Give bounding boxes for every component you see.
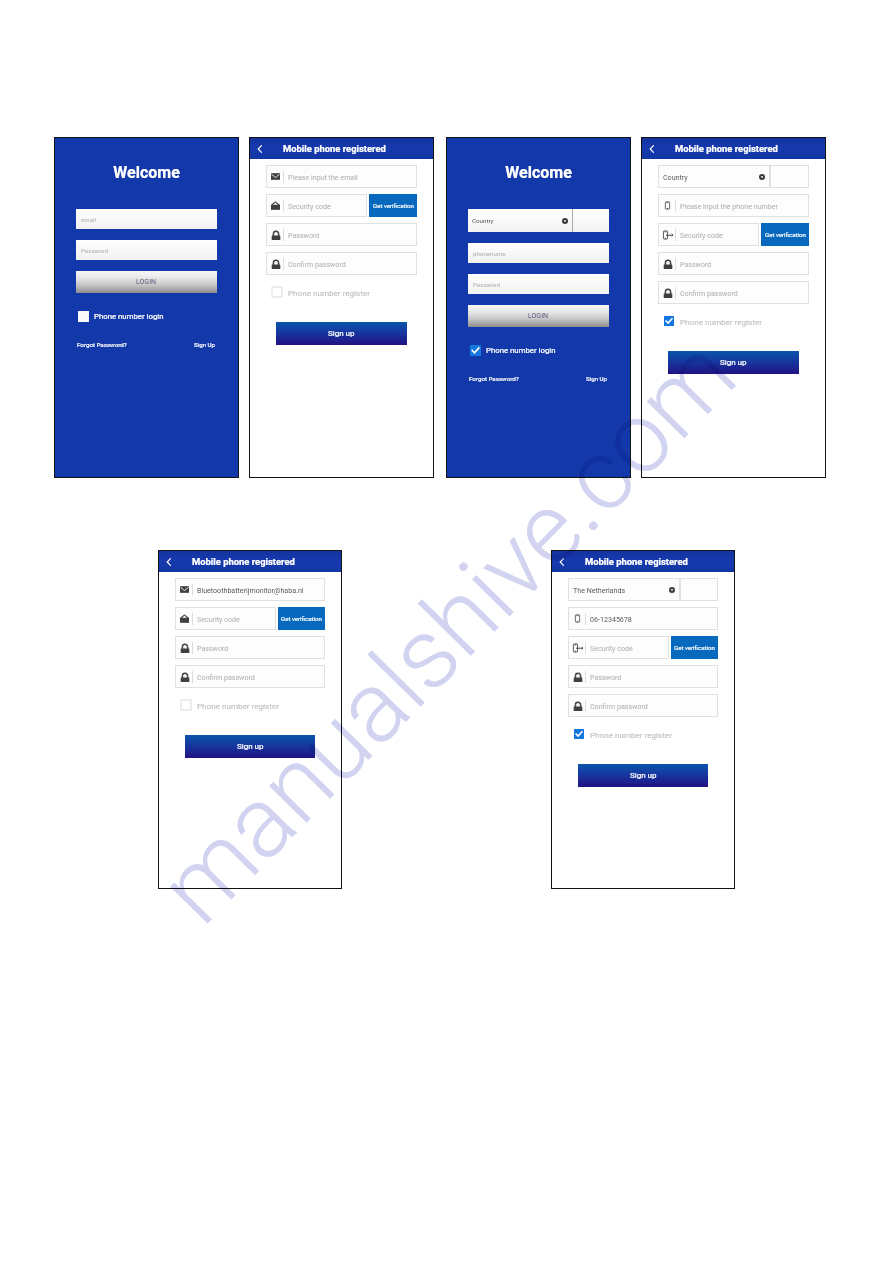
button[interactable]: The Netherlands [568, 578, 680, 601]
button[interactable]: email [76, 209, 217, 229]
button[interactable]: Confirm password [568, 694, 718, 717]
staticText: Security code [288, 202, 331, 210]
button[interactable]: Sign up [668, 351, 799, 374]
button[interactable]: Phone number register [272, 284, 370, 300]
staticText: Welcome [447, 163, 630, 182]
button[interactable]: Security code [266, 194, 367, 217]
staticText: Sign up [720, 358, 747, 367]
staticText: LOGIN [136, 278, 157, 286]
button[interactable]: Confirm password [175, 665, 325, 688]
staticText: Phone number login [486, 346, 556, 355]
staticText: Confirm password [680, 289, 738, 297]
staticText: Mobile phone registered [675, 143, 778, 154]
staticText: Get verification [373, 202, 414, 209]
button[interactable]: Get verification [369, 194, 417, 217]
button[interactable]: Sign Up [586, 375, 608, 382]
staticText: Password [680, 260, 712, 268]
button[interactable]: Please input the phone number [658, 194, 809, 217]
staticText: Phone number register [288, 288, 370, 297]
button[interactable]: phonenume [468, 243, 609, 263]
button[interactable]: Back [556, 556, 568, 568]
staticText: Mobile phone registered [585, 556, 688, 567]
staticText: Sign up [237, 742, 264, 751]
button[interactable]: Security code [658, 223, 759, 246]
button[interactable]: Phone number register [181, 697, 279, 713]
staticText: Phone number login [94, 312, 164, 321]
staticText: Security code [197, 615, 240, 623]
staticText: Phone number register [680, 317, 762, 326]
button[interactable]: Back [254, 143, 266, 155]
button[interactable]: Security code [568, 636, 669, 659]
staticText: phonenume [473, 250, 506, 257]
button[interactable]: Password [175, 636, 325, 659]
button[interactable]: Phone number register [574, 726, 672, 742]
staticText: Password [81, 247, 109, 254]
button[interactable]: Country [468, 209, 572, 232]
button[interactable]: Back [163, 556, 175, 568]
staticText: LOGIN [528, 312, 549, 320]
staticText: Security code [680, 231, 723, 239]
staticText: Get verification [765, 231, 806, 238]
staticText: Password [288, 231, 320, 239]
staticText: Phone number register [590, 730, 672, 739]
staticText: Get verification [674, 644, 715, 651]
staticText: Please input the email [288, 173, 358, 181]
staticText: Password [590, 673, 622, 681]
staticText: Welcome [55, 163, 238, 182]
staticText: Mobile phone registered [192, 556, 295, 567]
button[interactable]: Get verification [278, 607, 325, 630]
button[interactable]: Password [568, 665, 718, 688]
staticText: Confirm password [288, 260, 346, 268]
button[interactable]: Sign Up [194, 341, 216, 348]
button[interactable]: Forgot Password? [469, 375, 519, 382]
button[interactable] [573, 209, 609, 232]
button[interactable]: Password [266, 223, 417, 246]
staticText: Sign up [630, 771, 657, 780]
button[interactable]: Phone number login [78, 311, 164, 322]
button[interactable] [770, 165, 809, 188]
staticText: 06-12345678 [590, 615, 632, 623]
staticText: email [81, 216, 97, 223]
button[interactable]: Confirm password [658, 281, 809, 304]
staticText: Sign up [328, 329, 355, 338]
staticText: Get verification [281, 615, 322, 622]
staticText: Password [473, 281, 501, 288]
button[interactable]: Country [658, 165, 770, 188]
button[interactable]: Sign up [578, 764, 708, 787]
button[interactable]: Password [658, 252, 809, 275]
staticText: Password [197, 644, 229, 652]
button[interactable]: LOGIN [468, 305, 609, 327]
button[interactable]: Sign up [276, 322, 407, 345]
staticText: Country [663, 173, 688, 181]
staticText: Phone number register [197, 701, 279, 710]
button[interactable]: Sign up [185, 735, 315, 758]
button[interactable]: Back [646, 143, 658, 155]
button[interactable]: Get verification [761, 223, 809, 246]
button[interactable]: Bluetoothbatterijmonitor@haba.nl [175, 578, 325, 601]
button[interactable]: LOGIN [76, 271, 217, 293]
button[interactable]: Please input the email [266, 165, 417, 188]
staticText: Confirm password [590, 702, 648, 710]
button[interactable]: Confirm password [266, 252, 417, 275]
staticText: Mobile phone registered [283, 143, 386, 154]
button[interactable]: Get verification [671, 636, 718, 659]
button[interactable]: Phone number register [664, 313, 762, 329]
staticText: Country [472, 217, 494, 224]
staticText: Security code [590, 644, 633, 652]
button[interactable]: 06-12345678 [568, 607, 718, 630]
button[interactable]: Security code [175, 607, 276, 630]
staticText: Bluetoothbatterijmonitor@haba.nl [197, 586, 304, 594]
staticText: Please input the phone number [680, 202, 778, 210]
button[interactable]: Phone number login [470, 345, 556, 356]
button[interactable]: Password [76, 240, 217, 260]
staticText: Confirm password [197, 673, 255, 681]
staticText: The Netherlands [573, 586, 626, 594]
button[interactable]: Forgot Password? [77, 341, 127, 348]
button[interactable] [680, 578, 718, 601]
button[interactable]: Password [468, 274, 609, 294]
